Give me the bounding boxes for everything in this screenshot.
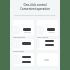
button[interactable]: Remote control: [47, 28, 55, 31]
staticText: Switch: [47, 31, 56, 34]
button[interactable]: Remote control: [45, 44, 54, 46]
staticText: One-click control: [10, 3, 60, 7]
button[interactable]: Device card: [37, 39, 58, 50]
button[interactable]: Device card: [37, 20, 58, 36]
staticText: Smart control for every appliance in you…: [13, 14, 57, 17]
button[interactable]: Remote control: [44, 59, 49, 61]
staticText: Mini remote: [13, 36, 25, 39]
staticText: Convenient operation: [10, 7, 60, 11]
staticText: Remote: [23, 31, 32, 34]
button[interactable]: Remote control: [23, 28, 31, 31]
button[interactable]: Remote control: [22, 56, 31, 58]
staticText: Wall switch: [37, 36, 48, 39]
button[interactable]: Device card: [13, 39, 34, 50]
button[interactable]: Device card: [13, 20, 34, 36]
button[interactable]: Remote control: [22, 42, 31, 45]
button[interactable]: Remote control: [45, 40, 54, 42]
button[interactable]: Device card: [37, 53, 58, 66]
button[interactable]: Remote control: [22, 61, 31, 63]
staticText: Smart plug: [13, 50, 24, 53]
button[interactable]: Device card: [13, 53, 34, 66]
